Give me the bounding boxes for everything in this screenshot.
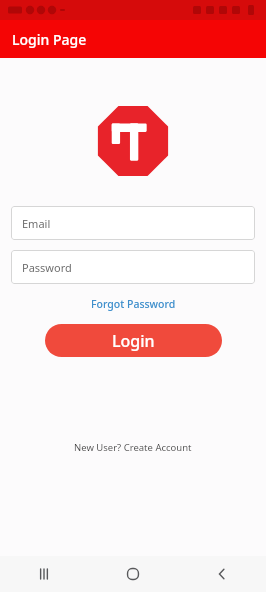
button[interactable]: Recent apps xyxy=(0,556,88,592)
staticText: Login xyxy=(112,330,155,352)
button[interactable]: New User? Create Account xyxy=(70,439,196,456)
button[interactable]: Forgot Password xyxy=(87,296,180,312)
button[interactable]: Back xyxy=(177,556,266,592)
staticText: Password xyxy=(22,260,72,275)
staticText: Login Page xyxy=(12,30,87,49)
staticText: Forgot Password xyxy=(91,297,176,311)
staticText: New User? Create Account xyxy=(74,441,192,454)
button[interactable]: Email xyxy=(11,206,255,240)
button[interactable]: Home xyxy=(88,556,177,592)
button[interactable]: Login xyxy=(45,324,222,357)
staticText: Email xyxy=(22,216,51,231)
button[interactable]: Password xyxy=(11,250,255,284)
